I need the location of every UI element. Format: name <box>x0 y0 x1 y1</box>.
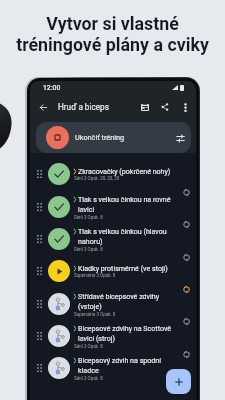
button[interactable]: Share <box>157 99 173 115</box>
button[interactable]: Repeat exercise <box>182 253 191 262</box>
staticText: tréningové plány a cviky <box>16 34 209 55</box>
button[interactable]: Save workout <box>137 99 153 115</box>
staticText: Sérií 3 Opak. 8 <box>74 247 103 252</box>
button[interactable]: Back <box>34 98 52 116</box>
staticText: Supersérie 3 Opak. 8 <box>74 312 116 317</box>
button[interactable]: Ukončiť tréning <box>36 122 191 153</box>
button[interactable]: Repeat exercise <box>182 350 191 359</box>
staticText: Bicepsový zdvih na spodní kladce <box>78 356 175 375</box>
staticText: Sérií 3 Opak. 8 <box>74 376 103 381</box>
staticText: Sérií 3 Opak. 8 <box>74 215 103 220</box>
button[interactable]: Repeat exercise <box>182 285 191 294</box>
staticText: Kladky protisměrné (ve stoji) <box>78 264 168 272</box>
staticText: Bicepsové zdvihy na Scottově lavici (str… <box>78 324 175 343</box>
staticText: Sérií 3 Opak. 8 <box>74 344 103 349</box>
staticText: Hruď a biceps <box>58 102 109 112</box>
button[interactable]: Tlak s velkou činkou na rovné lavici <box>30 191 196 223</box>
staticText: Střídavé bicepsové zdvihy (vstoje) <box>78 292 175 311</box>
button[interactable]: Bicepsový zdvih na spodní kladce <box>30 352 196 384</box>
staticText: Supersérie 3 Opak. 8 <box>74 273 116 278</box>
button[interactable]: Repeat exercise <box>182 317 191 326</box>
button[interactable]: Repeat exercise <box>182 382 191 391</box>
button[interactable]: Add exercise <box>166 369 191 394</box>
staticText: Zkracovačky (pokrčené nohy) <box>78 167 171 175</box>
button[interactable]: Repeat exercise <box>182 188 191 197</box>
staticText: Vytvor si vlastné <box>46 13 179 34</box>
button[interactable]: More options <box>177 99 193 115</box>
staticText: Tlak s velkou činkou na rovné lavici <box>78 195 175 214</box>
button[interactable]: Tlak s velkou činkou (hlavou nahoru) <box>30 223 196 255</box>
staticText: 12:00 <box>43 84 61 92</box>
button[interactable]: Zkracovačky (pokrčené nohy) <box>30 158 196 190</box>
button[interactable]: Workout settings <box>172 130 188 146</box>
button[interactable]: Střídavé bicepsové zdvihy (vstoje) <box>30 288 196 320</box>
staticText: Tlak s velkou činkou (hlavou nahoru) <box>78 227 175 246</box>
staticText: Ukončiť tréning <box>75 133 125 142</box>
button[interactable]: Bicepsové zdvihy na Scottově lavici (str… <box>30 320 196 352</box>
button[interactable]: Kladky protisměrné (ve stoji) <box>30 255 196 287</box>
button[interactable]: Repeat exercise <box>182 220 191 229</box>
staticText: Sérií 3 Opak. 20, 20, 20 <box>74 176 120 181</box>
